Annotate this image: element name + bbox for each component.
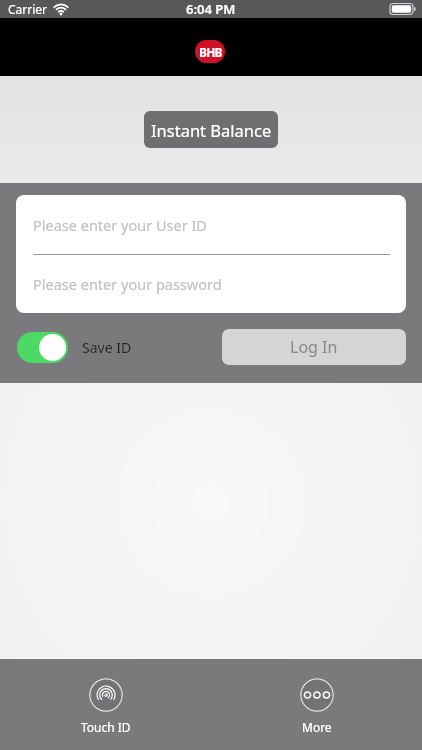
staticText: Carrier <box>8 1 48 17</box>
button[interactable] <box>17 332 68 363</box>
button[interactable]: BHB <box>195 40 225 63</box>
button[interactable]: Log In <box>222 329 406 365</box>
button[interactable]: Touch ID <box>0 659 211 750</box>
button[interactable]: More <box>211 659 422 750</box>
button[interactable]: Instant Balance <box>144 111 278 148</box>
staticText: 6:04 PM <box>186 0 236 18</box>
staticText: Please enter your password <box>33 274 222 294</box>
staticText: More <box>302 719 332 735</box>
staticText: Touch ID <box>81 719 131 735</box>
staticText: Instant Balance <box>151 119 272 141</box>
button[interactable]: Please enter your password <box>16 255 406 313</box>
staticText: Log In <box>290 336 338 358</box>
button[interactable]: Please enter your User ID <box>16 195 406 254</box>
staticText: Save ID <box>82 338 132 357</box>
staticText: BHB <box>199 44 222 60</box>
staticText: Please enter your User ID <box>33 215 207 235</box>
